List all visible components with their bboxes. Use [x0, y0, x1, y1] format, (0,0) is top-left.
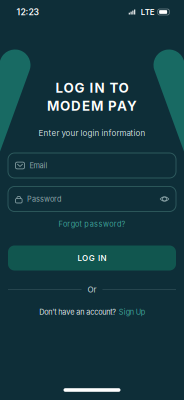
button[interactable]: Forgot password? — [58, 220, 125, 228]
button[interactable]: Password — [0, 0, 184, 400]
staticText: 12:23 — [16, 7, 39, 17]
staticText: Don't have an account? — [39, 308, 116, 316]
button[interactable]: Sign Up — [119, 308, 145, 316]
staticText: Or — [87, 285, 96, 294]
staticText: LTE — [141, 7, 155, 17]
staticText: LOG IN TO — [55, 80, 128, 96]
staticText: Sign Up — [119, 308, 145, 316]
staticText: Password — [27, 195, 61, 203]
staticText: Email — [29, 161, 47, 170]
staticText: Forgot password? — [58, 220, 125, 228]
staticText: LOG IN — [77, 253, 106, 263]
staticText: Enter your login information — [38, 128, 145, 138]
button[interactable]: Show password — [156, 193, 173, 205]
button[interactable]: LOG IN — [8, 245, 176, 270]
button[interactable]: Email — [0, 0, 184, 400]
staticText: MODEM PAY — [47, 98, 137, 114]
